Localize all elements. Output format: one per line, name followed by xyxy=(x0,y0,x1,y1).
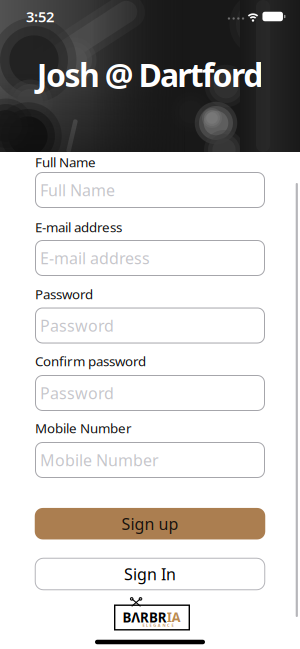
staticText: Mobile Number xyxy=(40,449,159,471)
staticText: Josh @ Dartford xyxy=(37,53,263,96)
staticText: E-mail address xyxy=(40,247,150,269)
staticText: Sign In xyxy=(124,563,176,585)
staticText: ELEGANCE xyxy=(142,622,174,628)
staticText: E-mail address xyxy=(35,218,122,236)
staticText: Full Name xyxy=(40,179,115,201)
staticText: Mobile Number xyxy=(35,419,132,437)
staticText: Password xyxy=(40,315,114,336)
staticText: Sign up xyxy=(121,513,178,534)
staticText: Password xyxy=(40,382,114,404)
button[interactable]: Sign up xyxy=(35,508,265,539)
staticText: IA xyxy=(167,608,180,626)
staticText: Password xyxy=(35,285,93,303)
button[interactable]: Sign In xyxy=(35,558,265,590)
staticText: BΛRBR xyxy=(122,608,167,626)
staticText: Full Name xyxy=(35,153,96,171)
staticText: Confirm password xyxy=(35,352,146,370)
staticText: 3:52 xyxy=(26,7,54,26)
